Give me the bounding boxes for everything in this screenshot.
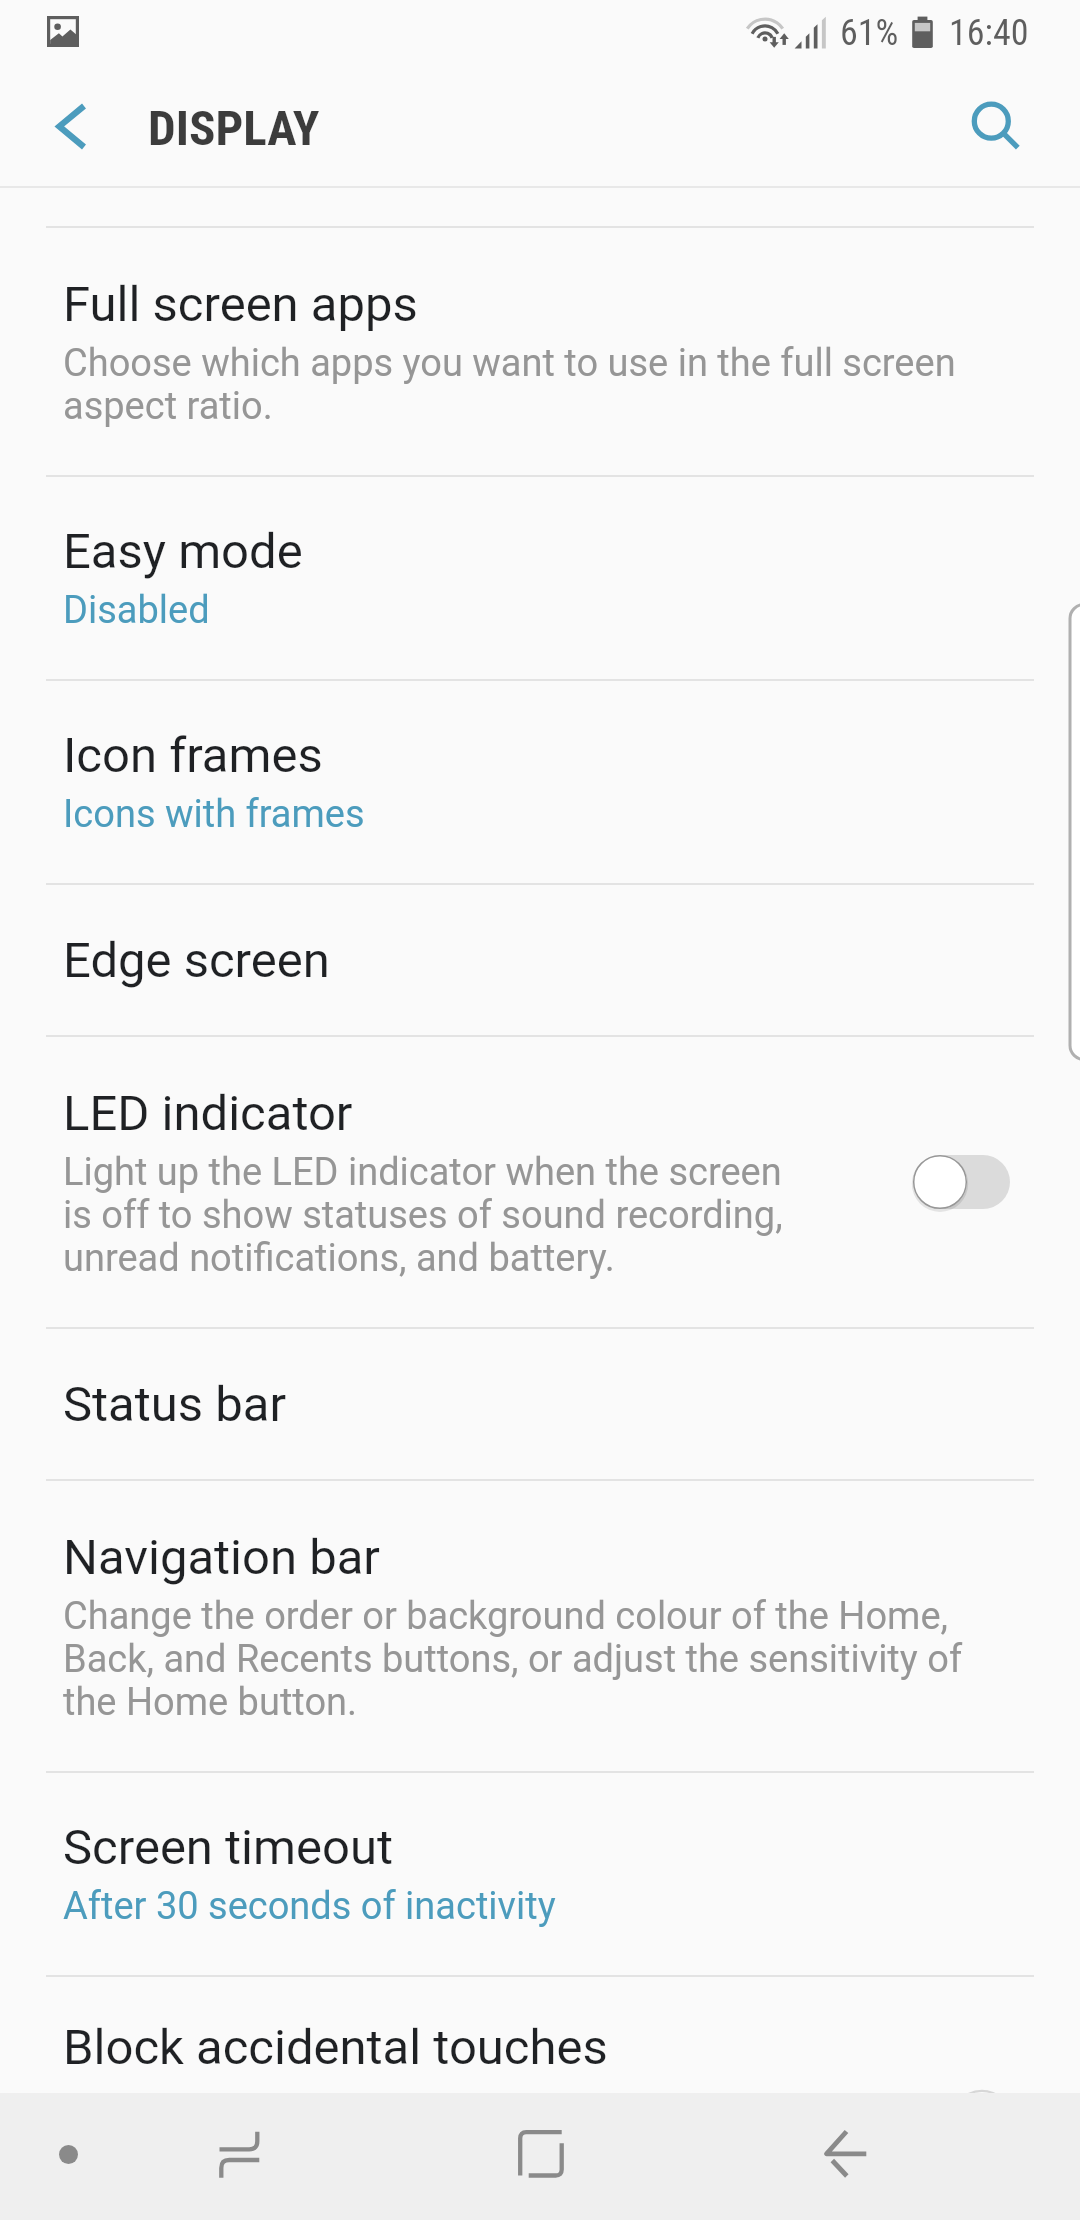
staticText: Block accidental touches bbox=[63, 2019, 608, 2076]
staticText: Screen timeout bbox=[63, 1819, 393, 1876]
staticText: Navigation bar bbox=[63, 1529, 380, 1586]
staticText: Full screen apps bbox=[63, 276, 418, 333]
staticText: Icon frames bbox=[63, 727, 323, 784]
button[interactable]: Screen timeout bbox=[0, 1773, 1080, 1975]
staticText: Light up the LED indicator when the scre… bbox=[63, 1150, 808, 1280]
button[interactable]: LED indicator bbox=[907, 1151, 1017, 1213]
staticText: Disabled bbox=[63, 588, 210, 633]
button[interactable]: Search bbox=[950, 78, 1040, 178]
button[interactable]: Back bbox=[800, 2093, 890, 2220]
staticText: LED indicator bbox=[63, 1085, 353, 1142]
button[interactable]: LED indicator bbox=[0, 1037, 1080, 1327]
staticText: Change the order or background colour of… bbox=[63, 1594, 988, 1724]
button[interactable]: Icon frames bbox=[0, 681, 1080, 883]
staticText: DISPLAY bbox=[148, 100, 320, 157]
staticText: 61% bbox=[840, 12, 899, 54]
staticText: Easy mode bbox=[63, 523, 303, 580]
button[interactable]: Edge screen bbox=[0, 885, 1080, 1035]
button[interactable]: Full screen apps bbox=[0, 228, 1080, 475]
staticText: After 30 seconds of inactivity bbox=[63, 1884, 556, 1929]
staticText: Status bar bbox=[63, 1376, 287, 1433]
button[interactable]: Easy mode bbox=[0, 477, 1080, 679]
button[interactable]: Status bar bbox=[0, 1329, 1080, 1479]
button[interactable]: Home bbox=[497, 2093, 587, 2220]
staticText: Icons with frames bbox=[63, 792, 365, 837]
button[interactable]: Block accidental touches bbox=[0, 1977, 1080, 2117]
button[interactable]: Recent apps bbox=[195, 2093, 285, 2220]
button[interactable]: Navigate up bbox=[28, 78, 116, 178]
button[interactable]: Navigation bar bbox=[0, 1481, 1080, 1771]
staticText: Edge screen bbox=[63, 932, 330, 989]
staticText: 16:40 bbox=[949, 12, 1029, 54]
staticText: Choose which apps you want to use in the… bbox=[63, 341, 988, 428]
